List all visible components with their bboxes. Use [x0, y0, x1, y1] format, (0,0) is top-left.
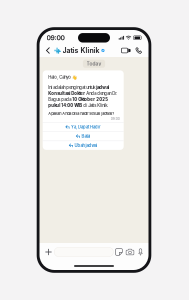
- button[interactable]: Ya, Dapat Hadir: [43, 123, 124, 131]
- button[interactable]: Ubah jadwal: [43, 141, 124, 150]
- button[interactable]: Back: [42, 44, 53, 56]
- staticText: Batal: [81, 134, 90, 139]
- button[interactable]: Attach: [43, 246, 54, 258]
- button[interactable]: Batal: [43, 132, 124, 141]
- staticText: Ini adalah pengingat untuk jadwal Konsul…: [48, 85, 117, 108]
- staticText: Ya, Dapat Hadir: [71, 125, 101, 130]
- staticText: Apakah Anda bisa hadir sesuai jadwal?: [48, 111, 114, 116]
- button[interactable]: Voice call: [132, 44, 144, 56]
- button[interactable]: Jatis Klinik: [53, 46, 109, 55]
- button[interactable]: Camera: [124, 246, 135, 258]
- staticText: Halo, Cahyo 👋: [48, 75, 77, 80]
- staticText: 09:00: [46, 34, 64, 42]
- staticText: Today: [86, 61, 101, 67]
- button[interactable]: Video call: [119, 44, 132, 56]
- staticText: Jatis Klinik: [62, 46, 99, 55]
- staticText: Ubah jadwal: [74, 143, 97, 148]
- staticText: 09:00: [111, 117, 120, 121]
- button[interactable]: Voice message: [135, 246, 145, 258]
- button[interactable]: Stickers: [113, 246, 124, 258]
